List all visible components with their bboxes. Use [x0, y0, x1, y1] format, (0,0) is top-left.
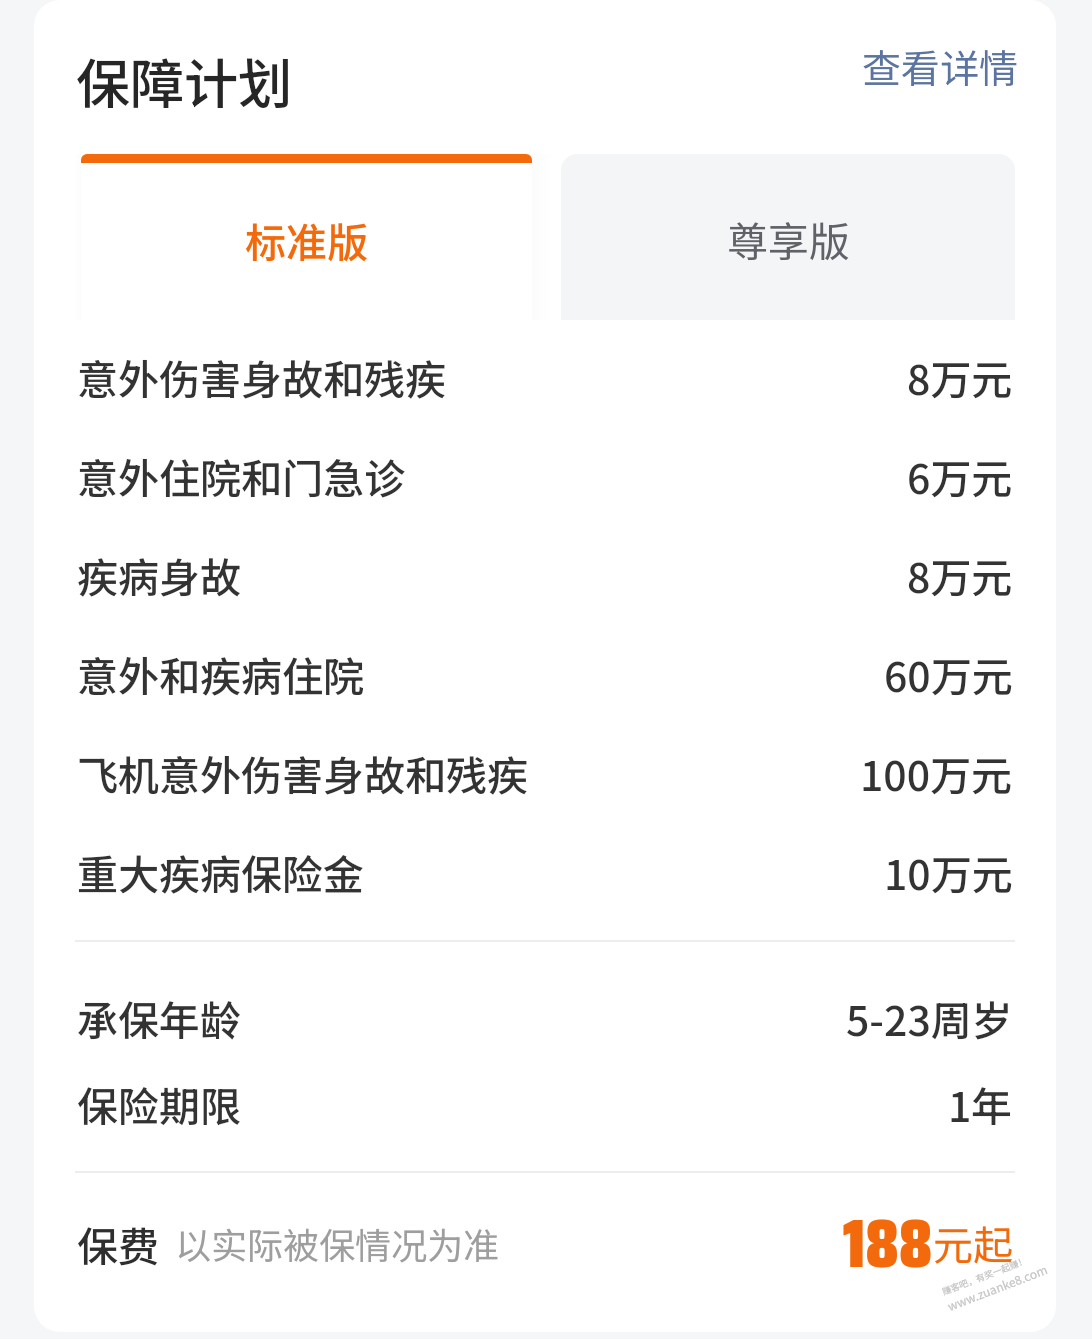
staticText: 标准版: [245, 210, 368, 269]
staticText: 5-23周岁: [846, 988, 1013, 1047]
staticText: 赚客吧，有奖一起赚！: [940, 1253, 1030, 1298]
staticText: 意外和疾病住院: [77, 644, 364, 703]
staticText: 重大疾病保险金: [77, 842, 364, 901]
staticText: 意外住院和门急诊: [77, 446, 405, 505]
staticText: 保费: [77, 1214, 159, 1273]
staticText: 保险期限: [77, 1074, 241, 1133]
staticText: 飞机意外伤害身故和残疾: [77, 743, 528, 802]
staticText: 查看详情: [862, 38, 1019, 94]
button[interactable]: 尊享版: [561, 154, 1015, 320]
staticText: 10万元: [884, 842, 1013, 901]
staticText: 元起: [933, 1214, 1013, 1272]
staticText: 8万元: [907, 347, 1013, 406]
staticText: 100万元: [860, 743, 1013, 802]
staticText: 以实际被保情况为准: [175, 1217, 500, 1269]
staticText: 承保年龄: [77, 988, 241, 1047]
staticText: 1年: [948, 1074, 1013, 1133]
staticText: 188: [843, 1190, 933, 1297]
staticText: 6万元: [907, 446, 1013, 505]
staticText: 保障计划: [76, 41, 292, 119]
staticText: 60万元: [884, 644, 1013, 703]
staticText: 8万元: [907, 545, 1013, 604]
staticText: www.zuanke8.com: [945, 1260, 1050, 1314]
staticText: 尊享版: [727, 209, 850, 268]
staticText: 意外伤害身故和残疾: [77, 347, 446, 406]
button[interactable]: 标准版: [81, 154, 532, 322]
staticText: 疾病身故: [77, 545, 241, 604]
button[interactable]: 查看详情: [848, 26, 1033, 106]
